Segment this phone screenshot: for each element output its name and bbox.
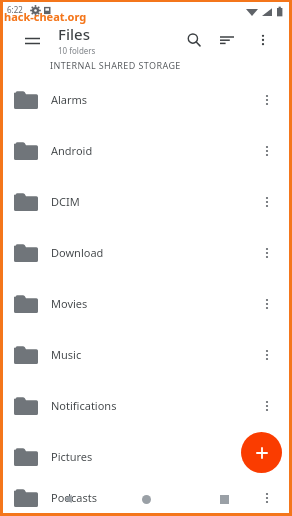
button[interactable]: Back [55, 486, 81, 512]
button[interactable]: More options for Music [253, 341, 281, 369]
button[interactable]: Recent apps [211, 486, 237, 512]
button[interactable]: Notifications [3, 380, 289, 431]
button[interactable]: Open navigation drawer [20, 28, 44, 52]
staticText: Android [51, 143, 253, 158]
staticText: hack-cheat.org [4, 9, 87, 24]
button[interactable]: DCIM [3, 176, 289, 227]
button[interactable]: More options for Podcasts [253, 484, 281, 512]
button[interactable]: More options for Pictures [253, 443, 281, 471]
button[interactable]: More options for Android [253, 137, 281, 165]
button[interactable]: Home [133, 486, 159, 512]
button[interactable]: Search [181, 27, 207, 53]
staticText: DCIM [51, 194, 253, 209]
staticText: Notifications [51, 398, 253, 413]
button[interactable]: More options for Alarms [253, 86, 281, 114]
button[interactable]: Sort [214, 27, 240, 53]
button[interactable]: More options for DCIM [253, 188, 281, 216]
staticText: Files [58, 24, 90, 44]
button[interactable]: More options for Movies [253, 290, 281, 318]
staticText: Movies [51, 296, 253, 311]
button[interactable]: Movies [3, 278, 289, 329]
button[interactable]: Create new [241, 432, 282, 473]
staticText: Pictures [51, 449, 253, 464]
button[interactable]: More options [250, 27, 276, 53]
button[interactable]: Download [3, 227, 289, 278]
staticText: Podcasts [51, 490, 253, 505]
staticText: 10 folders [58, 45, 96, 56]
button[interactable]: More options for Download [253, 239, 281, 267]
staticText: INTERNAL SHARED STORAGE [50, 59, 181, 71]
staticText: Download [51, 245, 253, 260]
button[interactable]: More options for Notifications [253, 392, 281, 420]
button[interactable]: Podcasts [3, 482, 289, 513]
staticText: Music [51, 347, 253, 362]
staticText: 6:22 [7, 4, 23, 15]
button[interactable]: Android [3, 125, 289, 176]
staticText: Alarms [51, 92, 253, 107]
button[interactable]: Pictures [3, 431, 289, 482]
button[interactable]: Music [3, 329, 289, 380]
button[interactable]: Alarms [3, 74, 289, 125]
